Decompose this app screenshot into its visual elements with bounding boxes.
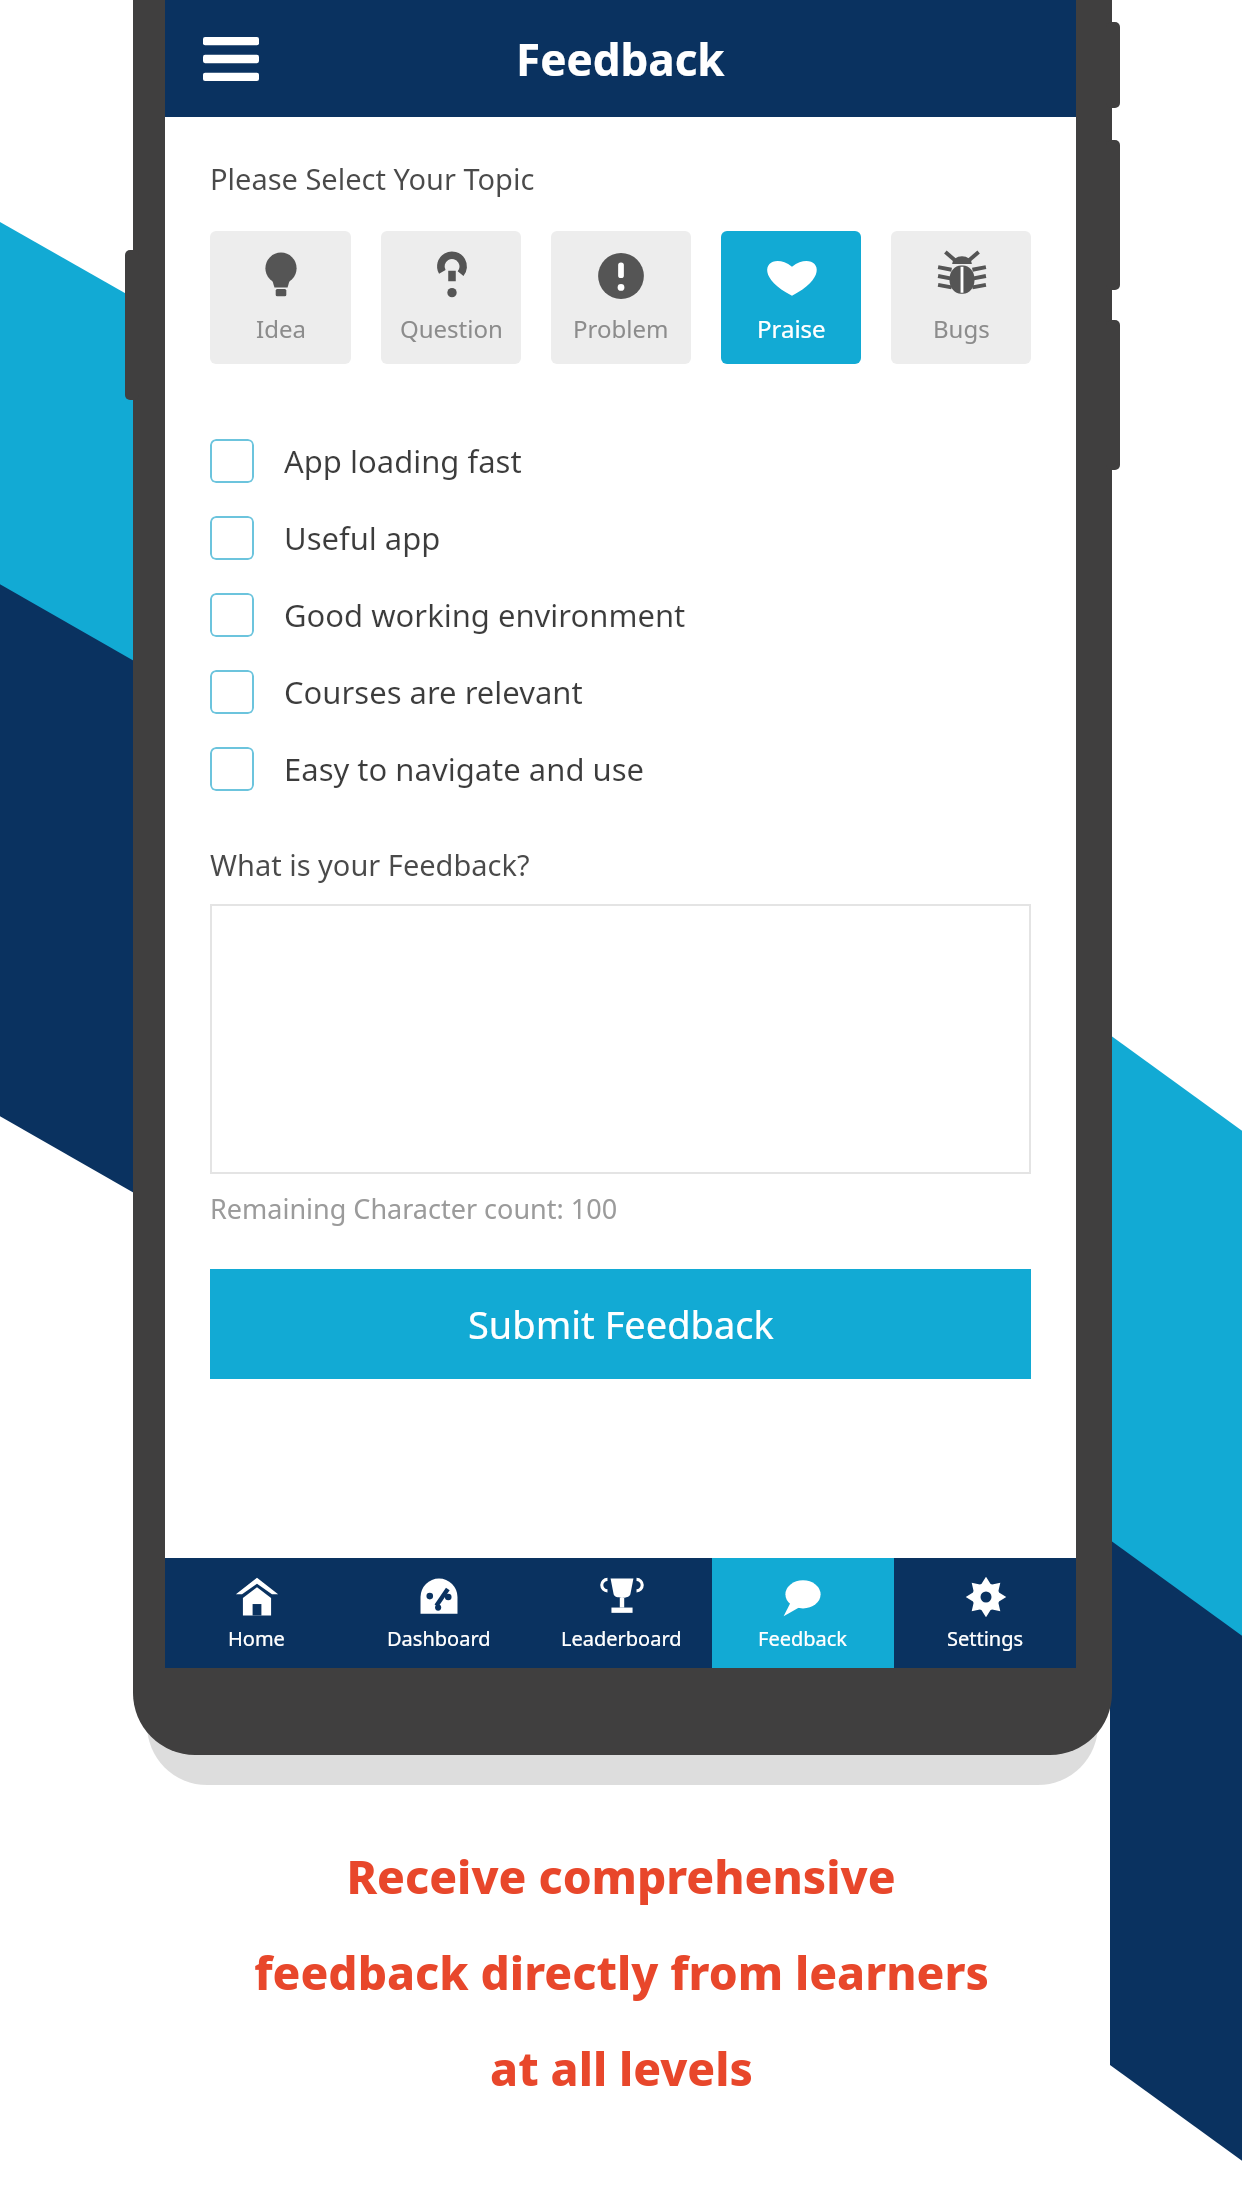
staticText: Dashboard [387,1625,491,1652]
staticText: Feedback [758,1625,848,1652]
button[interactable]: Courses are relevant [210,653,1031,730]
staticText: Useful app [284,517,441,559]
staticText: Question [400,312,503,345]
staticText: at all levels [490,2037,753,2100]
button[interactable]: Good working environment [210,576,1031,653]
button[interactable]: Question [381,231,521,364]
button[interactable]: Leaderboard [530,1558,712,1668]
button[interactable]: Problem [551,231,691,364]
button[interactable]: Praise [721,231,861,364]
button[interactable]: Useful app [210,499,1031,576]
button[interactable]: App loading fast [210,422,1031,499]
staticText: Home [228,1625,285,1652]
button[interactable]: Home [165,1558,348,1668]
staticText: Praise [757,312,826,345]
button[interactable]: Idea [210,231,351,364]
staticText: Receive comprehensive [346,1845,896,1908]
button[interactable]: Open navigation menu [191,19,271,99]
button[interactable]: Feedback [712,1558,894,1668]
staticText: Submit Feedback [468,1298,774,1350]
button[interactable]: Submit Feedback [210,1269,1031,1379]
staticText: Remaining Character count: 100 [210,1190,618,1227]
staticText: Please Select Your Topic [210,159,535,198]
staticText: Leaderboard [561,1625,682,1652]
staticText: Idea [256,312,306,345]
staticText: feedback directly from learners [254,1941,989,2004]
staticText: Problem [573,312,669,345]
staticText: Settings [947,1625,1024,1652]
staticText: Bugs [933,312,990,345]
button[interactable]: Bugs [891,231,1031,364]
staticText: App loading fast [284,440,522,482]
button[interactable]: Dashboard [348,1558,530,1668]
staticText: Feedback [516,29,725,89]
button[interactable]: Easy to navigate and use [210,730,1031,807]
button[interactable]: Feedback text field [210,904,1031,1174]
staticText: Good working environment [284,594,686,636]
staticText: Easy to navigate and use [284,748,645,790]
button[interactable]: Settings [894,1558,1076,1668]
staticText: What is your Feedback? [210,845,530,884]
staticText: Courses are relevant [284,671,583,713]
